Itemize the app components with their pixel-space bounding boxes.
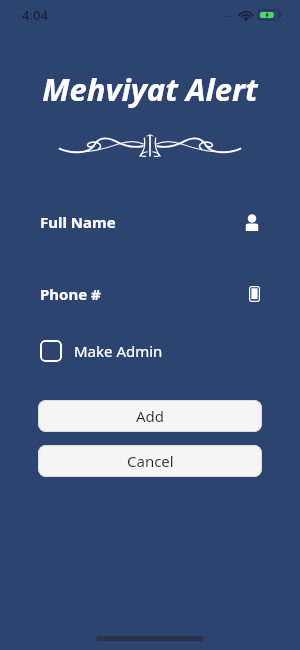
button[interactable]: Full Name: [0, 202, 300, 242]
staticText: Phone #: [40, 284, 101, 304]
staticText: Make Admin: [74, 341, 163, 361]
staticText: 4:04: [22, 6, 48, 24]
staticText: Full Name: [40, 212, 116, 232]
button[interactable]: Cancel: [38, 445, 262, 477]
button[interactable]: Add: [38, 400, 262, 432]
staticText: Cancel: [127, 451, 174, 471]
button[interactable]: Make Admin: [0, 334, 300, 368]
staticText: Add: [136, 406, 165, 426]
staticText: Mehviyat Alert: [42, 68, 258, 110]
button[interactable]: Phone #: [0, 274, 300, 314]
